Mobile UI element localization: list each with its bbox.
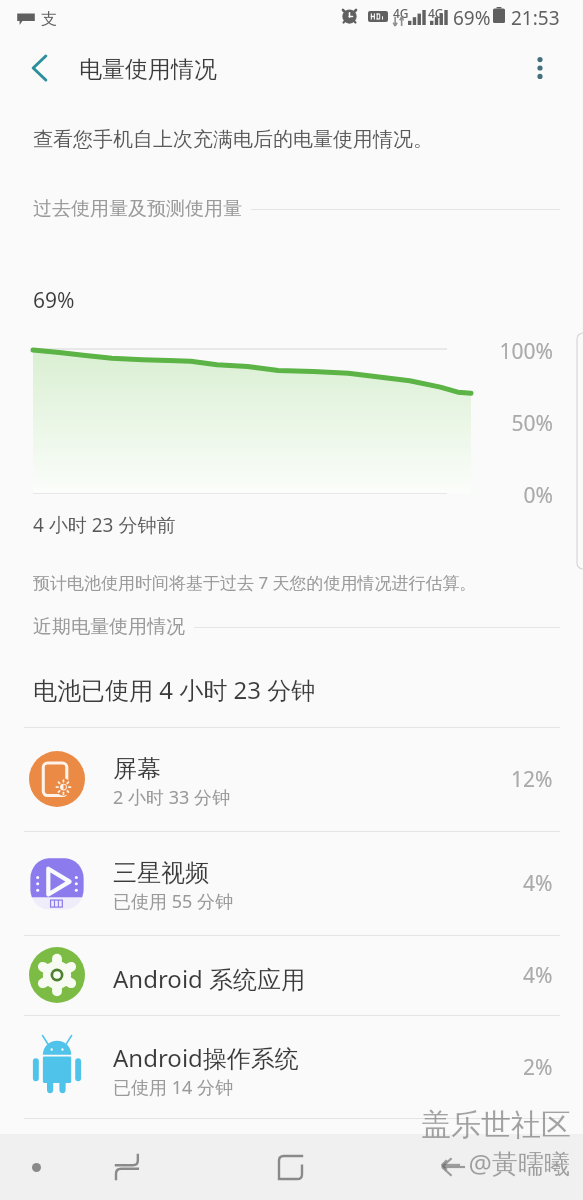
- staticText: 电量使用情况: [79, 55, 217, 84]
- staticText: 4%: [523, 869, 553, 898]
- staticText: 2%: [523, 1053, 553, 1082]
- staticText: 屏幕: [113, 754, 161, 784]
- staticText: 过去使用量及预测使用量: [33, 197, 242, 221]
- staticText: 已使用 14 分钟: [113, 1075, 233, 1100]
- button[interactable]: More options: [517, 45, 563, 91]
- button[interactable]: Android操作系统: [0, 1015, 583, 1119]
- button[interactable]: Back: [16, 45, 62, 91]
- staticText: 电池已使用 4 小时 23 分钟: [33, 673, 316, 706]
- staticText: ← @黃曘曦: [440, 1145, 570, 1181]
- staticText: 支: [41, 9, 57, 29]
- staticText: 4G: [428, 5, 444, 21]
- staticText: 69%: [453, 5, 491, 31]
- button[interactable]: Android 系统应用: [0, 935, 583, 1015]
- staticText: 12%: [511, 765, 553, 794]
- button[interactable]: 三星视频: [0, 831, 583, 935]
- staticText: 近期电量使用情况: [33, 615, 185, 639]
- staticText: 69%: [33, 286, 75, 315]
- staticText: 4%: [523, 961, 553, 990]
- button[interactable]: Home: [262, 1139, 318, 1195]
- staticText: 查看您手机自上次充满电后的电量使用情况。: [33, 127, 433, 152]
- staticText: 100%: [499, 337, 553, 366]
- staticText: Android操作系统: [113, 1041, 299, 1074]
- button[interactable]: Hide keyboard: [12, 1143, 60, 1191]
- staticText: 0%: [523, 481, 553, 510]
- button[interactable]: 屏幕: [0, 727, 583, 831]
- staticText: 盖乐世社区: [421, 1106, 571, 1144]
- staticText: 4G: [393, 5, 409, 21]
- staticText: 三星视频: [113, 858, 209, 888]
- button[interactable]: Recent apps: [99, 1139, 155, 1195]
- staticText: Android 系统应用: [113, 962, 306, 995]
- staticText: 2 小时 33 分钟: [113, 785, 230, 810]
- staticText: 预计电池使用时间将基于过去 7 天您的使用情况进行估算。: [33, 571, 477, 594]
- staticText: 50%: [511, 409, 553, 438]
- staticText: 已使用 55 分钟: [113, 889, 233, 914]
- button[interactable]: Back: [425, 1139, 481, 1195]
- staticText: 21:53: [511, 5, 560, 31]
- staticText: 4 小时 23 分钟前: [33, 512, 176, 538]
